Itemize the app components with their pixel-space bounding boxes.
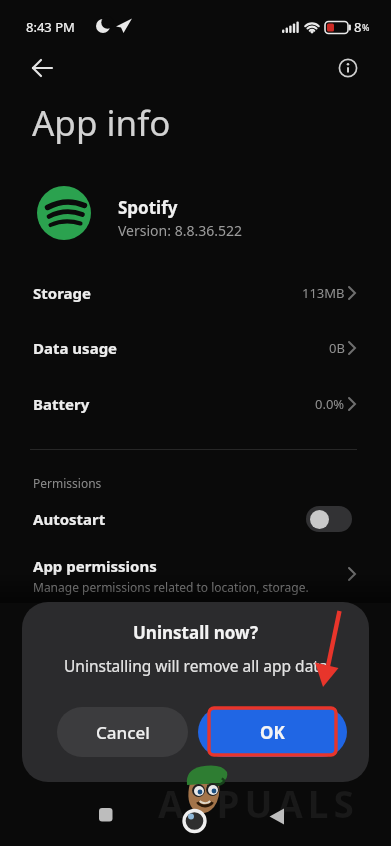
staticText: App info xyxy=(32,99,171,147)
staticText: Battery xyxy=(33,394,90,414)
staticText: Data usage xyxy=(33,338,118,358)
button[interactable]: Cancel xyxy=(57,707,188,757)
staticText: Manage permissions related to location, … xyxy=(33,579,309,595)
button[interactable] xyxy=(160,790,230,840)
staticText: Spotify xyxy=(118,196,178,219)
button[interactable] xyxy=(22,46,66,90)
button[interactable] xyxy=(306,506,352,532)
staticText: Autostart xyxy=(33,509,106,529)
staticText: Storage xyxy=(33,283,91,303)
button[interactable] xyxy=(326,46,370,90)
button[interactable] xyxy=(0,178,391,248)
button[interactable]: Autostart xyxy=(0,494,391,544)
button[interactable]: Battery xyxy=(0,376,391,432)
staticText: Version: 8.8.36.522 xyxy=(118,221,242,240)
staticText: App permissions xyxy=(33,556,157,576)
button[interactable]: Data usage xyxy=(0,320,391,376)
staticText: 113MB xyxy=(302,284,345,302)
staticText: Uninstalling will remove all app data xyxy=(64,655,328,676)
staticText: 0.0% xyxy=(315,395,345,413)
button[interactable] xyxy=(250,790,320,840)
staticText: OK xyxy=(260,721,285,744)
staticText: 0B xyxy=(329,339,345,357)
staticText: 8:43 PM xyxy=(26,18,75,36)
button[interactable]: OK xyxy=(198,707,347,757)
button[interactable]: App permissions xyxy=(0,548,391,602)
staticText: 8 xyxy=(354,18,362,36)
button[interactable]: Storage xyxy=(0,265,391,321)
staticText: Permissions xyxy=(33,475,102,491)
staticText: Cancel xyxy=(96,721,150,744)
staticText: % xyxy=(362,21,370,33)
staticText: Uninstall now? xyxy=(133,621,259,644)
staticText: APPUALS xyxy=(158,778,359,828)
button[interactable] xyxy=(70,790,140,840)
